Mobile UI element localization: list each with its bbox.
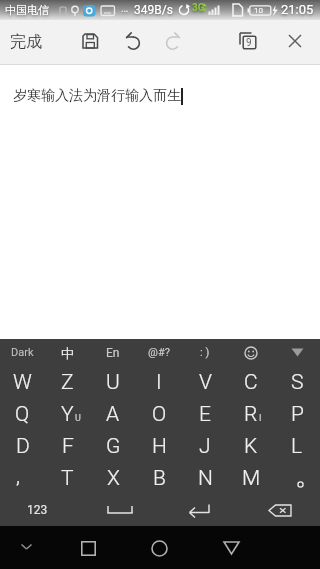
button[interactable]: P — [274, 398, 320, 430]
staticText: B — [153, 466, 166, 491]
button[interactable]: H — [136, 430, 182, 462]
button[interactable]: Q — [0, 398, 45, 430]
staticText: O — [152, 402, 167, 427]
button[interactable] — [157, 25, 189, 57]
button[interactable] — [70, 530, 106, 566]
button[interactable]: K — [228, 430, 274, 462]
button[interactable]: @#? — [136, 339, 182, 366]
button[interactable]: T — [45, 462, 90, 494]
button[interactable]: 中 — [45, 339, 90, 366]
staticText: G — [106, 434, 121, 459]
staticText: 完成 — [10, 32, 42, 52]
button[interactable]: W — [0, 366, 45, 398]
button[interactable] — [141, 530, 177, 566]
staticText: 10 — [254, 6, 263, 15]
staticText: 中国电信 — [5, 3, 49, 17]
button[interactable]: J — [182, 430, 228, 462]
staticText: L — [291, 434, 303, 459]
staticText: K — [244, 434, 258, 459]
staticText: M — [242, 466, 261, 491]
staticText: A — [106, 402, 120, 427]
button[interactable] — [80, 494, 160, 526]
staticText: 123 — [27, 503, 48, 517]
staticText: E — [199, 402, 211, 427]
button[interactable]: X — [90, 462, 136, 494]
staticText: H — [152, 434, 167, 459]
button[interactable]: I — [136, 366, 182, 398]
staticText: I — [156, 370, 162, 395]
button[interactable]: F — [45, 430, 90, 462]
staticText: W — [13, 370, 32, 395]
staticText: C — [244, 370, 258, 395]
staticText: 21:05 — [281, 2, 314, 17]
button[interactable] — [279, 25, 311, 57]
staticText: P — [291, 402, 304, 427]
staticText: Dark — [11, 346, 34, 359]
button[interactable]: C — [228, 366, 274, 398]
staticText: Q — [15, 402, 30, 427]
staticText: 岁寒输入法为滑行输入而生 — [13, 87, 181, 105]
staticText: N — [198, 466, 213, 491]
button[interactable]: A — [90, 398, 136, 430]
button[interactable] — [116, 25, 148, 57]
staticText: J — [199, 434, 211, 459]
staticText: 9 — [246, 37, 252, 49]
staticText: En — [106, 346, 120, 360]
staticText: : ) — [200, 346, 210, 359]
button[interactable]: 123 — [0, 494, 80, 526]
staticText: 中 — [61, 345, 74, 361]
button[interactable] — [213, 530, 249, 566]
button[interactable] — [74, 25, 106, 57]
button[interactable]: D — [0, 430, 45, 462]
button[interactable]: V — [182, 366, 228, 398]
button[interactable]: B — [136, 462, 182, 494]
button[interactable]: L — [274, 430, 320, 462]
staticText: X — [107, 466, 120, 491]
button[interactable]: R — [228, 398, 274, 430]
staticText: @#? — [148, 346, 170, 359]
staticText: … — [121, 2, 129, 15]
staticText: 349B/s — [134, 3, 173, 17]
button[interactable]: En — [90, 339, 136, 366]
button[interactable]: U — [90, 366, 136, 398]
button[interactable]: M — [228, 462, 274, 494]
button[interactable] — [14, 535, 38, 559]
button[interactable]: 9 — [231, 25, 263, 57]
button[interactable]: , — [0, 462, 45, 494]
button[interactable] — [274, 339, 320, 366]
staticText: U — [106, 370, 120, 395]
staticText: D — [16, 434, 30, 459]
button[interactable]: 完成 — [0, 20, 60, 64]
button[interactable]: Y — [45, 398, 90, 430]
staticText: 3G — [192, 2, 205, 14]
staticText: U — [75, 413, 81, 424]
button[interactable] — [160, 494, 240, 526]
button[interactable] — [240, 494, 320, 526]
button[interactable]: Dark — [0, 339, 45, 366]
staticText: T — [61, 466, 74, 491]
staticText: Y — [61, 402, 74, 427]
staticText: Z — [61, 370, 74, 395]
staticText: S — [291, 370, 304, 395]
staticText: F — [62, 434, 74, 459]
button[interactable]: S — [274, 366, 320, 398]
staticText: R — [244, 402, 258, 427]
button[interactable] — [274, 462, 320, 494]
staticText: , — [16, 464, 21, 489]
button[interactable]: : ) — [182, 339, 228, 366]
button[interactable]: Z — [45, 366, 90, 398]
staticText: V — [199, 370, 212, 395]
button[interactable]: N — [182, 462, 228, 494]
button[interactable]: E — [182, 398, 228, 430]
button[interactable]: G — [90, 430, 136, 462]
button[interactable]: O — [136, 398, 182, 430]
button[interactable] — [228, 339, 274, 366]
staticText: I — [259, 413, 262, 424]
